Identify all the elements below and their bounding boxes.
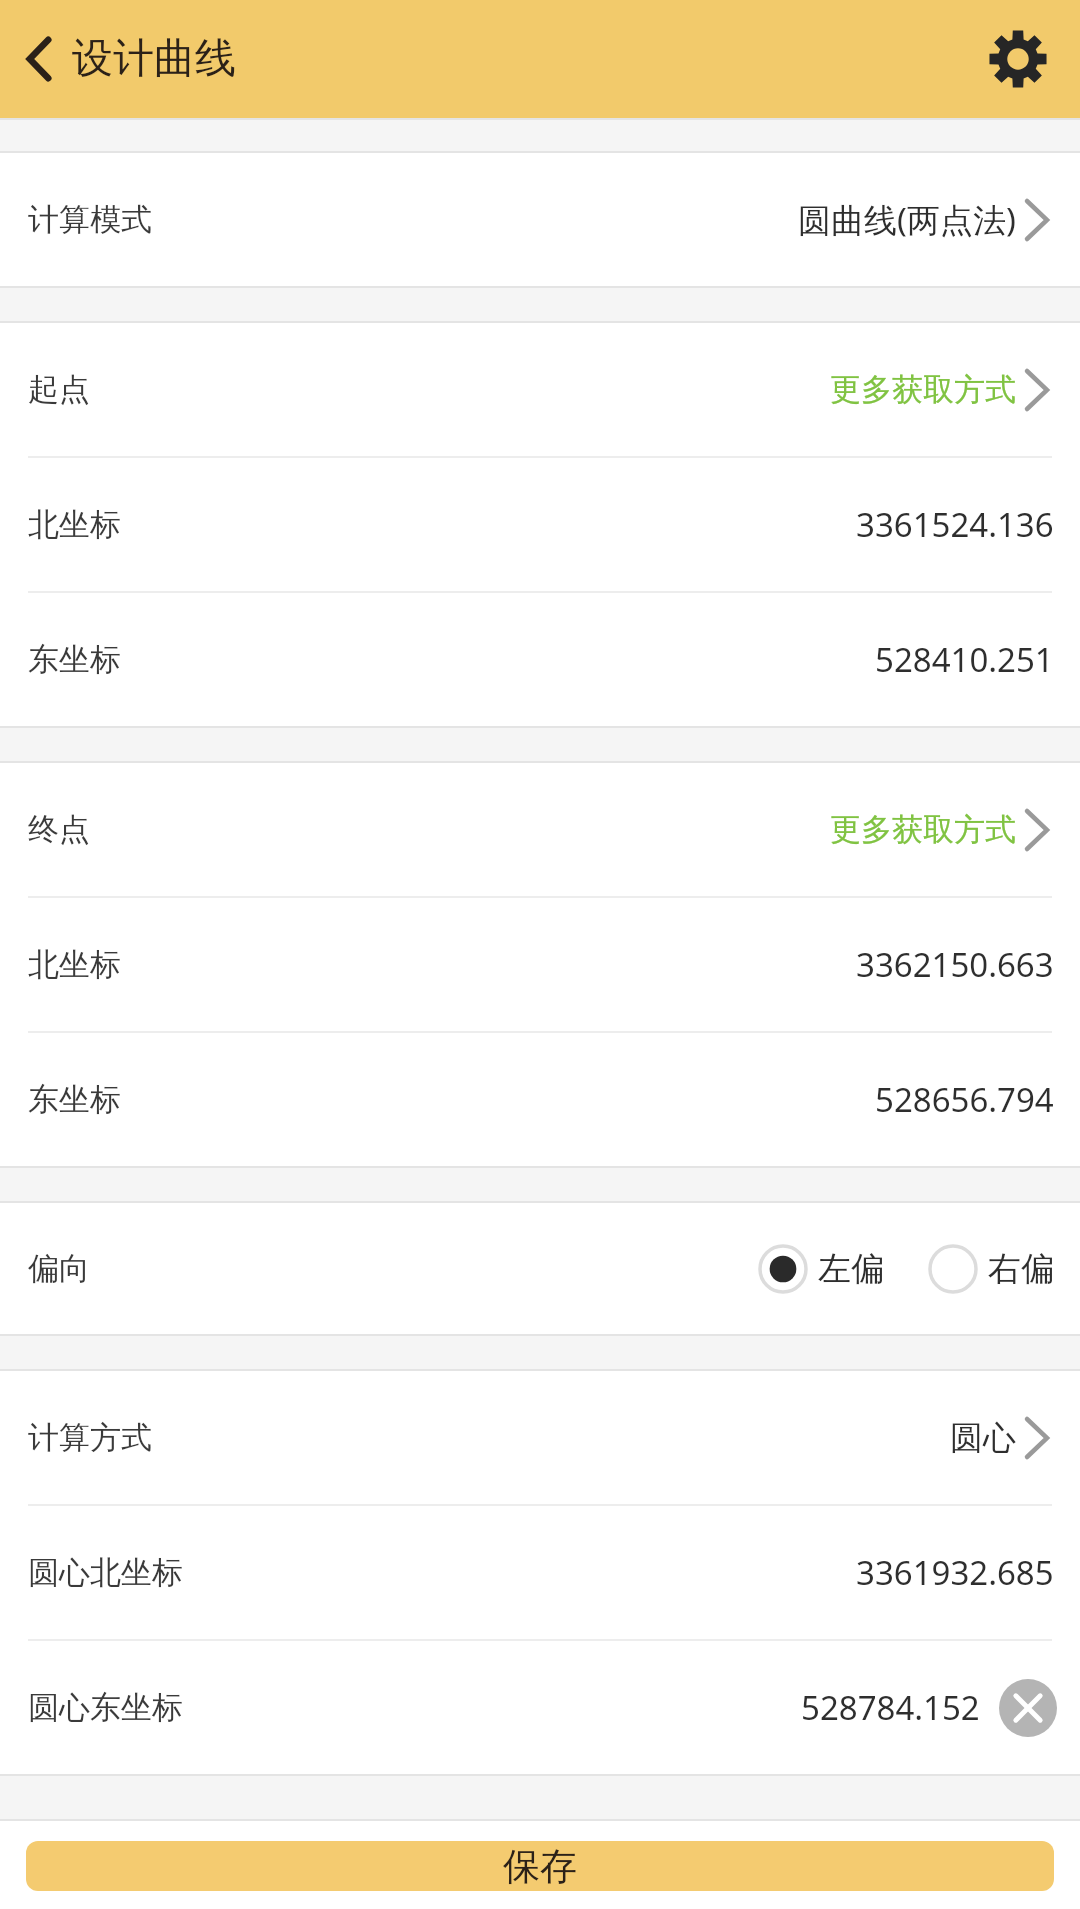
staticText: 东坐标	[28, 640, 121, 679]
button[interactable]: 保存	[26, 1841, 1054, 1891]
staticText: 更多获取方式	[830, 370, 1016, 409]
staticText: 3361932.685	[856, 1550, 1054, 1595]
button[interactable]: 左偏	[754, 1244, 888, 1294]
staticText: 528784.152	[801, 1685, 980, 1730]
staticText: 左偏	[818, 1248, 884, 1290]
staticText: 计算方式	[28, 1418, 152, 1457]
staticText: 圆心东坐标	[28, 1688, 183, 1727]
staticText: 3362150.663	[856, 942, 1054, 987]
staticText: 偏向	[28, 1249, 90, 1288]
button[interactable]: 计算方式	[0, 1371, 1080, 1504]
button[interactable]: 终点	[0, 763, 1080, 896]
staticText: 起点	[28, 370, 90, 409]
button[interactable]: 北坐标	[0, 458, 1080, 591]
staticText: 北坐标	[28, 505, 121, 544]
staticText: 528410.251	[875, 637, 1054, 682]
button[interactable]: 右偏	[924, 1244, 1058, 1294]
staticText: 右偏	[988, 1248, 1054, 1290]
button[interactable]: 设置	[970, 11, 1066, 107]
staticText: 东坐标	[28, 1080, 121, 1119]
button[interactable]: 圆心北坐标	[0, 1506, 1080, 1639]
button[interactable]: 东坐标	[0, 593, 1080, 726]
button[interactable]: 东坐标	[0, 1033, 1080, 1166]
staticText: 终点	[28, 810, 90, 849]
staticText: 圆曲线(两点法)	[798, 197, 1016, 242]
button[interactable]: 北坐标	[0, 898, 1080, 1031]
button[interactable]: 起点	[0, 323, 1080, 456]
staticText: 3361524.136	[856, 502, 1054, 547]
staticText: 528656.794	[875, 1077, 1054, 1122]
button[interactable]: 返回	[8, 9, 70, 109]
staticText: 圆心北坐标	[28, 1553, 183, 1592]
staticText: 圆心	[950, 1417, 1016, 1459]
button[interactable]: 计算模式	[0, 153, 1080, 286]
staticText: 更多获取方式	[830, 810, 1016, 849]
button[interactable]: 圆心东坐标	[0, 1641, 1080, 1774]
staticText: 设计曲线	[72, 33, 236, 85]
staticText: 计算模式	[28, 200, 152, 239]
staticText: 北坐标	[28, 945, 121, 984]
staticText: 保存	[503, 1843, 577, 1890]
button[interactable]: 清除	[996, 1676, 1060, 1740]
